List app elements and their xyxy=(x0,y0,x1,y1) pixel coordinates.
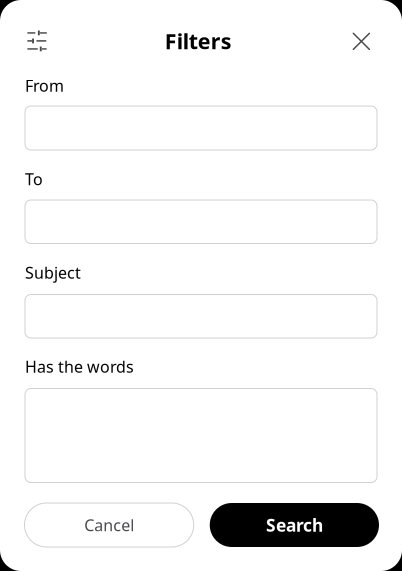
button[interactable]: Has the words xyxy=(25,388,377,482)
button[interactable]: Filter settings xyxy=(17,21,57,61)
staticText: To xyxy=(25,168,43,190)
button[interactable]: Subject xyxy=(25,294,377,338)
staticText: Search xyxy=(266,513,323,536)
staticText: From xyxy=(25,75,64,96)
staticText: Cancel xyxy=(84,514,134,536)
button[interactable]: To xyxy=(25,200,377,243)
button[interactable]: Cancel xyxy=(24,503,194,547)
button[interactable]: From xyxy=(25,106,377,150)
button[interactable]: Close xyxy=(341,21,381,61)
staticText: Subject xyxy=(25,262,81,283)
button[interactable]: Search xyxy=(210,503,379,547)
staticText: Has the words xyxy=(25,356,134,377)
staticText: Filters xyxy=(165,27,232,55)
